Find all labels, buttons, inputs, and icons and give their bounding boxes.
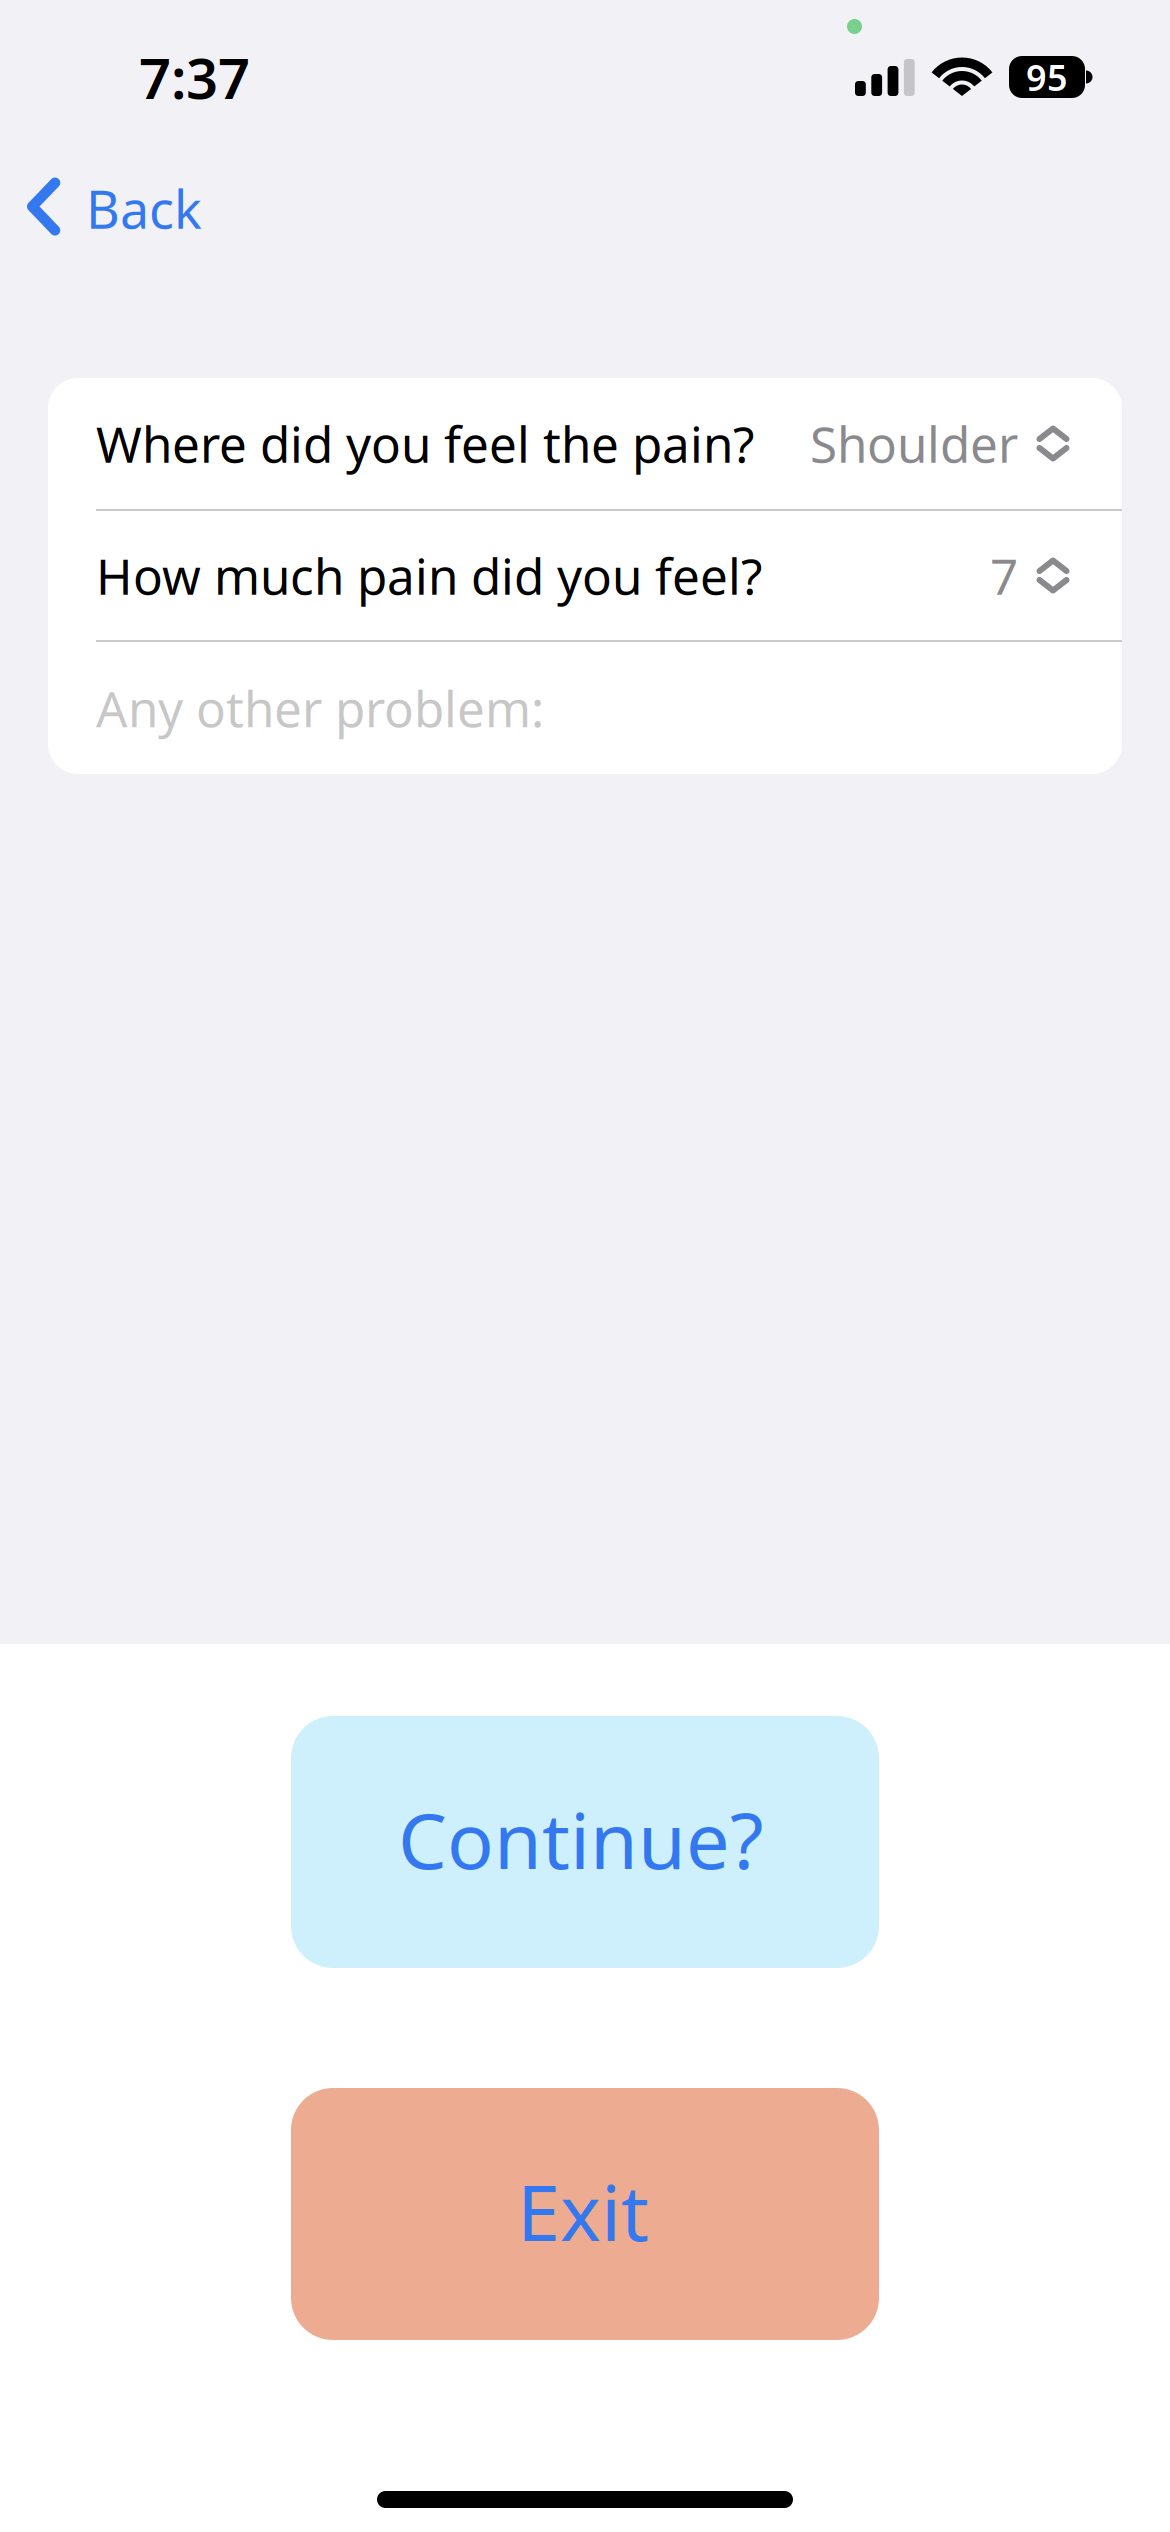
button[interactable]: Continue?: [291, 1716, 879, 1968]
staticText: Shoulder: [810, 411, 1018, 476]
staticText: Back: [86, 174, 202, 243]
button[interactable]: Where did you feel the pain?: [48, 378, 1122, 509]
staticText: Where did you feel the pain?: [96, 411, 754, 476]
staticText: 7:37: [139, 40, 250, 114]
button[interactable]: Back: [0, 150, 236, 263]
button[interactable]: Any other problem:: [48, 642, 1122, 774]
staticText: 7: [990, 543, 1018, 608]
staticText: Continue?: [398, 1788, 764, 1890]
staticText: Exit: [517, 2160, 649, 2262]
staticText: 95: [1026, 53, 1068, 101]
staticText: Any other problem:: [96, 675, 544, 741]
button[interactable]: How much pain did you feel?: [48, 511, 1122, 640]
button[interactable]: Exit: [291, 2088, 879, 2340]
staticText: How much pain did you feel?: [96, 543, 762, 608]
